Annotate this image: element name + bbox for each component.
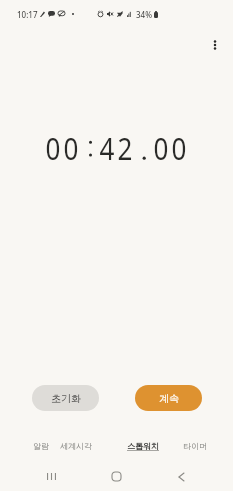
staticText: 10:17: [17, 9, 38, 20]
staticText: 0: [63, 127, 78, 169]
staticText: 타이머: [183, 441, 207, 451]
staticText: 계속: [159, 392, 179, 405]
button[interactable]: 초기화: [32, 385, 99, 411]
button[interactable]: Back: [149, 462, 214, 491]
button[interactable]: Home: [84, 462, 149, 491]
staticText: 2: [117, 127, 132, 169]
button[interactable]: 계속: [135, 385, 202, 411]
button[interactable]: 알람: [33, 441, 49, 451]
staticText: 스톱워치: [127, 441, 159, 451]
staticText: 0: [153, 127, 168, 169]
staticText: 0: [45, 127, 60, 169]
button[interactable]: 세계시각: [60, 441, 92, 451]
button[interactable]: Recent apps: [19, 462, 84, 491]
staticText: 34%: [136, 9, 152, 20]
staticText: 세계시각: [60, 441, 92, 451]
staticText: 4: [99, 127, 114, 169]
button[interactable]: 스톱워치: [127, 441, 159, 451]
staticText: 알람: [33, 441, 49, 451]
staticText: 초기화: [51, 392, 81, 405]
button[interactable]: 타이머: [183, 441, 207, 451]
button[interactable]: More options: [197, 27, 233, 63]
staticText: 0: [171, 127, 186, 169]
